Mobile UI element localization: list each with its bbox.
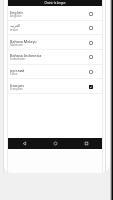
staticText: Bahasa Indonesia xyxy=(10,53,42,58)
button[interactable]: français xyxy=(8,79,102,94)
button[interactable]: Bahasa Indonesia xyxy=(8,49,102,64)
button[interactable]: Not selected xyxy=(89,70,93,74)
staticText: English xyxy=(10,10,23,15)
button[interactable]: Selected xyxy=(89,85,93,89)
button[interactable]: Not selected xyxy=(89,55,93,59)
staticText: Française xyxy=(10,87,23,91)
staticText: Indonésien xyxy=(10,57,26,61)
button[interactable]: Bahasa Melayu xyxy=(8,35,102,50)
staticText: русский xyxy=(10,68,25,73)
button[interactable]: русский xyxy=(8,64,102,79)
staticText: Bahasa Melayu xyxy=(10,39,37,44)
button[interactable]: Not selected xyxy=(89,12,93,16)
staticText: Choisir la langue xyxy=(44,1,66,5)
staticText: Anglaise xyxy=(10,14,22,18)
button[interactable]: Home xyxy=(40,138,71,149)
button[interactable]: Not selected xyxy=(89,41,93,45)
staticText: russe xyxy=(10,72,18,76)
button[interactable]: العربية xyxy=(8,20,102,35)
button[interactable]: Not selected xyxy=(89,26,93,30)
button[interactable]: Back xyxy=(8,138,40,149)
staticText: العربية xyxy=(10,24,21,28)
button[interactable]: English xyxy=(8,6,102,21)
staticText: arabe xyxy=(10,28,18,32)
button[interactable]: Recents xyxy=(71,138,102,149)
staticText: Malaisien xyxy=(10,43,23,47)
staticText: français xyxy=(10,83,24,88)
